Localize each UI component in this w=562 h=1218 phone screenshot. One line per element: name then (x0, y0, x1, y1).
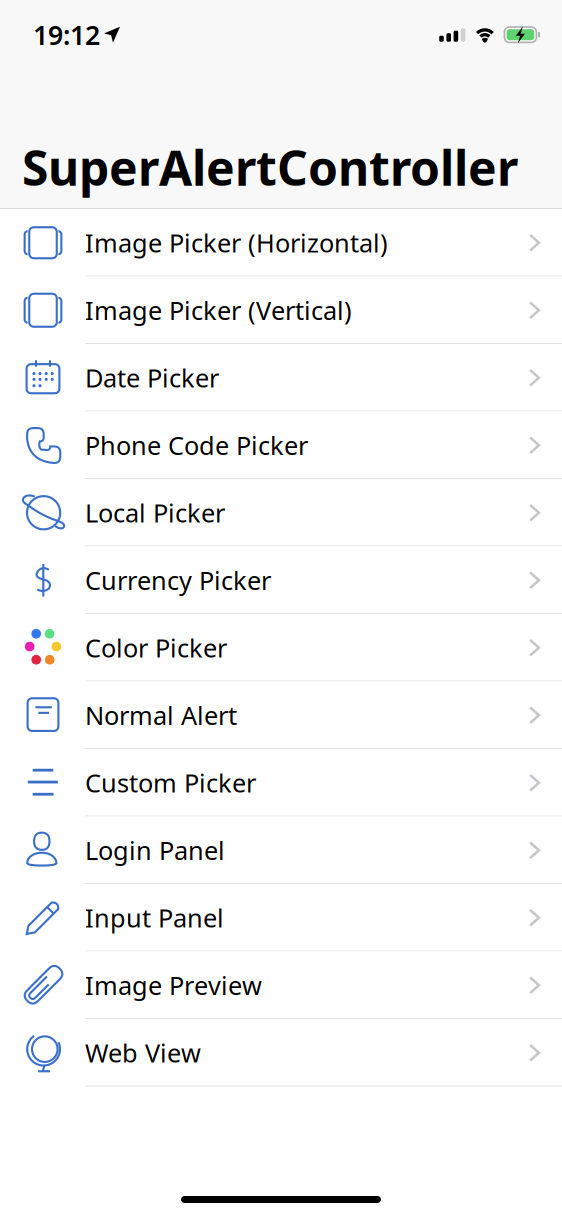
staticText: Login Panel (85, 833, 225, 867)
staticText: Input Panel (85, 901, 224, 934)
button[interactable]: Image Picker (Vertical) (0, 276, 562, 344)
staticText: Image Preview (85, 968, 262, 1002)
button[interactable]: Currency Picker (0, 546, 562, 614)
button[interactable]: Custom Picker (0, 749, 562, 816)
staticText: 19:12 (33, 17, 100, 52)
staticText: Phone Code Picker (85, 428, 308, 462)
staticText: Date Picker (85, 361, 219, 394)
button[interactable]: Image Preview (0, 951, 562, 1019)
staticText: Normal Alert (85, 698, 237, 732)
staticText: Web View (85, 1036, 201, 1069)
staticText: Currency Picker (85, 563, 271, 597)
button[interactable]: Normal Alert (0, 681, 562, 749)
button[interactable]: Input Panel (0, 884, 562, 951)
staticText: Image Picker (Horizontal) (85, 226, 388, 259)
staticText: Color Picker (85, 631, 227, 664)
button[interactable]: Color Picker (0, 614, 562, 681)
button[interactable]: Image Picker (Horizontal) (0, 209, 562, 276)
staticText: Image Picker (Vertical) (85, 293, 352, 327)
staticText: SuperAlertController (22, 135, 518, 199)
button[interactable]: Web View (0, 1019, 562, 1086)
button[interactable]: Local Picker (0, 479, 562, 546)
staticText: Local Picker (85, 496, 225, 529)
staticText: Custom Picker (85, 766, 256, 799)
button[interactable]: Date Picker (0, 344, 562, 411)
button[interactable]: Login Panel (0, 816, 562, 884)
button[interactable]: Phone Code Picker (0, 411, 562, 479)
